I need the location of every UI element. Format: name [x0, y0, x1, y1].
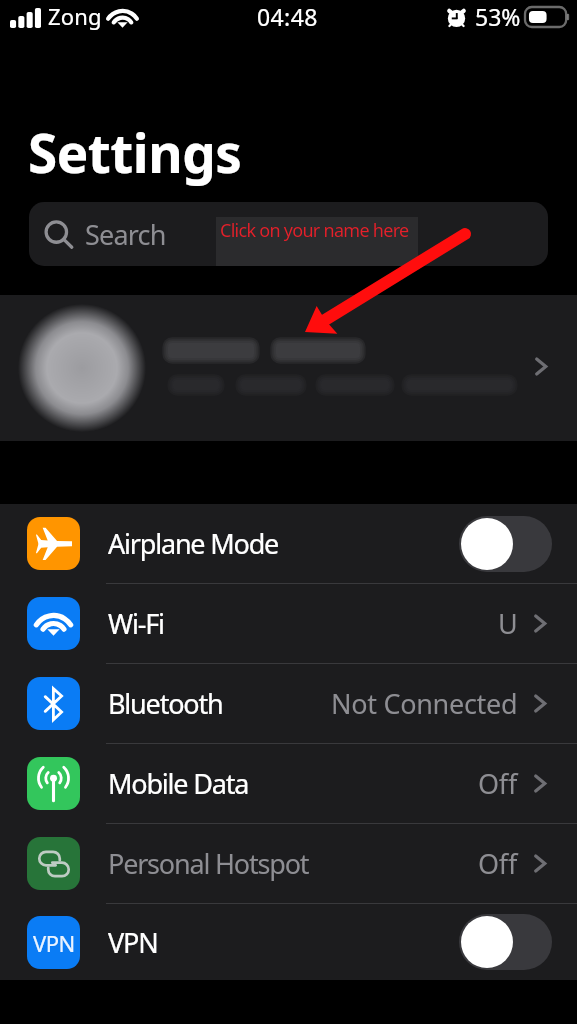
button[interactable]: Airplane Mode [0, 504, 577, 583]
button[interactable]: Toggle off [459, 516, 552, 572]
staticText: U [498, 605, 518, 642]
staticText: Mobile Data [108, 765, 249, 802]
staticText: Zong [48, 1, 102, 31]
button[interactable]: Mobile Data [0, 744, 577, 823]
button[interactable]: Toggle off [459, 914, 552, 970]
staticText: VPN [108, 924, 158, 961]
staticText: Wi-Fi [108, 605, 164, 642]
staticText: Click on your name here [220, 218, 409, 243]
staticText: Settings [28, 116, 242, 188]
button[interactable]: Search [29, 202, 548, 266]
staticText: Not Connected [331, 685, 518, 722]
staticText: Airplane Mode [108, 525, 279, 562]
staticText: Off [478, 845, 518, 882]
button[interactable]: VPN [0, 904, 577, 980]
button[interactable] [0, 295, 577, 441]
staticText: 53% [475, 1, 521, 32]
button[interactable]: Wi-Fi [0, 584, 577, 663]
staticText: Search [85, 216, 166, 253]
staticText: Bluetooth [108, 685, 223, 722]
staticText: 04:48 [257, 1, 318, 32]
staticText: VPN [33, 928, 75, 958]
button[interactable]: Bluetooth [0, 664, 577, 743]
staticText: Off [478, 765, 518, 802]
button[interactable]: Personal Hotspot [0, 824, 577, 903]
staticText: Personal Hotspot [108, 845, 309, 882]
